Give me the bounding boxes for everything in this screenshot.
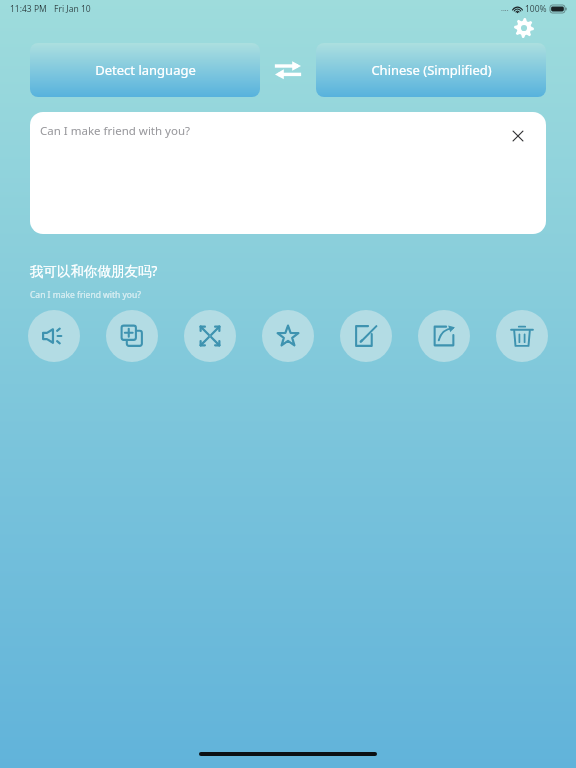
button[interactable]: Chinese (Simplified) — [316, 43, 546, 97]
staticText: Detect language — [95, 61, 196, 79]
button[interactable]: Settings — [513, 17, 535, 39]
button[interactable]: Favorite — [262, 310, 314, 362]
button[interactable]: Fullscreen — [184, 310, 236, 362]
staticText: Can I make friend with you? — [30, 289, 141, 301]
button[interactable]: Share — [418, 310, 470, 362]
staticText: 100% — [525, 3, 547, 15]
button[interactable]: Clear text — [505, 123, 531, 149]
button[interactable]: Swap languages — [260, 43, 316, 97]
staticText: 我可以和你做朋友吗? — [30, 262, 158, 280]
button[interactable]: Speak — [28, 310, 80, 362]
staticText: Fri Jan 10 — [54, 3, 91, 15]
staticText: Chinese (Simplified) — [371, 61, 492, 79]
staticText: .... — [501, 4, 509, 14]
button[interactable]: Edit — [340, 310, 392, 362]
button[interactable]: Copy — [106, 310, 158, 362]
staticText: 11:43 PM — [10, 3, 47, 15]
button[interactable]: Delete — [496, 310, 548, 362]
button[interactable]: Detect language — [30, 43, 260, 97]
staticText: Can I make friend with you? — [40, 123, 191, 139]
button[interactable]: Can I make friend with you? — [30, 112, 546, 234]
